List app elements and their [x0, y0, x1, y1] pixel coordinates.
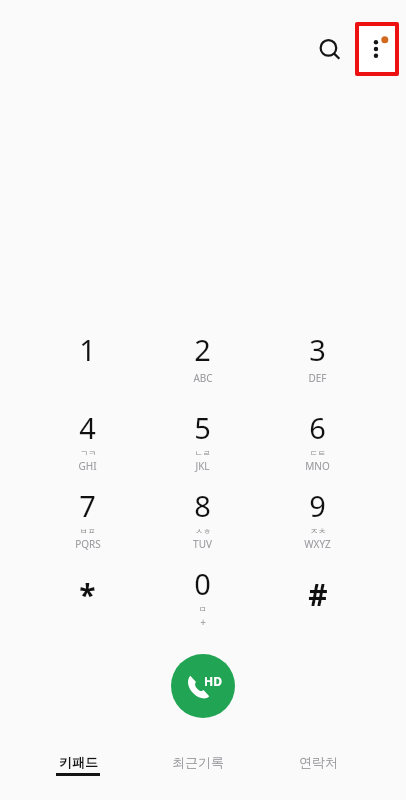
staticText: ABC [193, 371, 213, 385]
button[interactable]: 8 [145, 486, 260, 564]
button[interactable]: Call [171, 654, 235, 718]
button[interactable]: 키패드 [18, 754, 138, 798]
staticText: 5 [194, 408, 211, 447]
staticText: * [79, 574, 96, 615]
staticText: ㄷㅌ [310, 448, 326, 458]
staticText: ㄱㅋ [80, 448, 96, 458]
staticText: 7 [79, 486, 96, 525]
button[interactable]: 7 [30, 486, 145, 564]
button[interactable]: 연락처 [258, 754, 378, 798]
staticText: DEF [308, 371, 327, 385]
staticText: 0 [194, 564, 211, 603]
button[interactable]: # [260, 564, 375, 636]
staticText: TUV [193, 537, 212, 551]
staticText: 최근기록 [172, 754, 224, 770]
staticText: 연락처 [299, 754, 338, 770]
staticText: HD [204, 673, 222, 689]
staticText: JKL [195, 459, 210, 473]
staticText: 8 [194, 486, 211, 525]
button[interactable]: 9 [260, 486, 375, 564]
staticText: ㅁ [199, 604, 207, 614]
staticText: 1 [79, 330, 96, 369]
button[interactable]: * [30, 564, 145, 636]
staticText: ㅂㅍ [80, 526, 96, 536]
staticText: GHI [78, 459, 97, 473]
button[interactable]: 6 [260, 408, 375, 486]
staticText: 키패드 [59, 754, 98, 770]
staticText: ㅅㅎ [195, 526, 211, 536]
staticText: ㄴㄹ [195, 448, 211, 458]
button[interactable]: 3 [260, 330, 375, 408]
staticText: # [308, 574, 328, 615]
staticText: 2 [194, 330, 211, 369]
button[interactable]: More options [359, 26, 395, 72]
staticText: MNO [305, 459, 330, 473]
staticText: 4 [79, 408, 96, 447]
staticText: WXYZ [304, 537, 331, 551]
button[interactable]: 2 [145, 330, 260, 408]
staticText: 9 [309, 486, 326, 525]
button[interactable]: 4 [30, 408, 145, 486]
staticText: + [200, 615, 206, 629]
button[interactable]: Search [312, 32, 348, 68]
staticText: 6 [309, 408, 326, 447]
button[interactable]: 최근기록 [138, 754, 258, 798]
staticText: 3 [309, 330, 326, 369]
button[interactable]: 0 [145, 564, 260, 636]
button[interactable]: 1 [30, 330, 145, 408]
staticText: ㅈㅊ [310, 526, 326, 536]
staticText: PQRS [75, 537, 101, 551]
button[interactable]: 5 [145, 408, 260, 486]
